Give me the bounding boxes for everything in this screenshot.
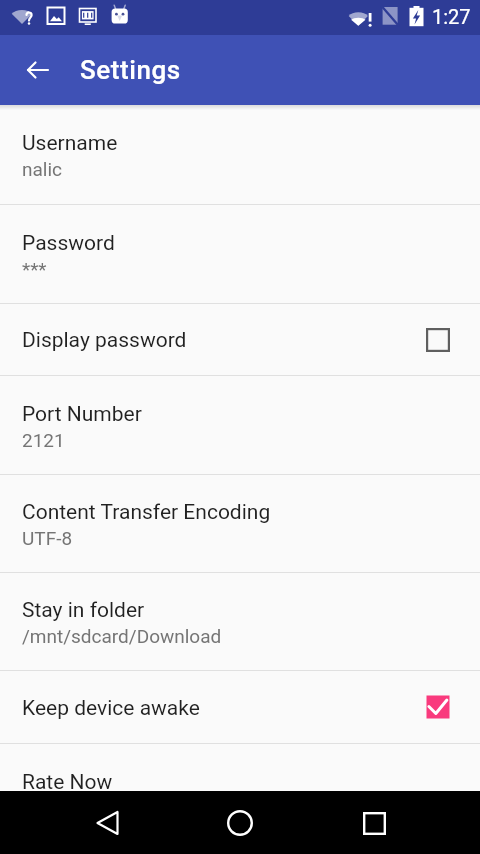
staticText: Settings: [80, 55, 181, 85]
staticText: /mnt/sdcard/Download: [22, 625, 222, 647]
button[interactable]: Username: [0, 105, 480, 204]
staticText: Display password: [22, 328, 426, 353]
staticText: Rate Now: [22, 770, 113, 791]
button[interactable]: Back: [14, 46, 62, 94]
staticText: Port Number: [22, 402, 142, 427]
staticText: UTF-8: [22, 527, 73, 549]
staticText: Keep device awake: [22, 696, 426, 721]
staticText: Content Transfer Encoding: [22, 500, 271, 525]
button[interactable]: Password: [0, 205, 480, 303]
button[interactable]: Rate Now: [0, 744, 480, 791]
staticText: Username: [22, 131, 118, 156]
staticText: 2121: [22, 429, 65, 451]
button[interactable]: Port Number: [0, 376, 480, 474]
staticText: nalic: [22, 158, 63, 180]
staticText: 1:27: [432, 5, 471, 28]
button[interactable]: Recent apps: [344, 793, 404, 853]
button[interactable]: Home: [210, 793, 270, 853]
staticText: Stay in folder: [22, 598, 145, 623]
button[interactable]: Display password: [0, 304, 480, 375]
button[interactable]: Content Transfer Encoding: [0, 475, 480, 572]
staticText: Password: [22, 231, 115, 256]
button[interactable]: Back: [78, 793, 138, 853]
button[interactable]: Keep device awake: [0, 671, 480, 743]
staticText: ***: [22, 258, 47, 280]
button[interactable]: Stay in folder: [0, 573, 480, 670]
